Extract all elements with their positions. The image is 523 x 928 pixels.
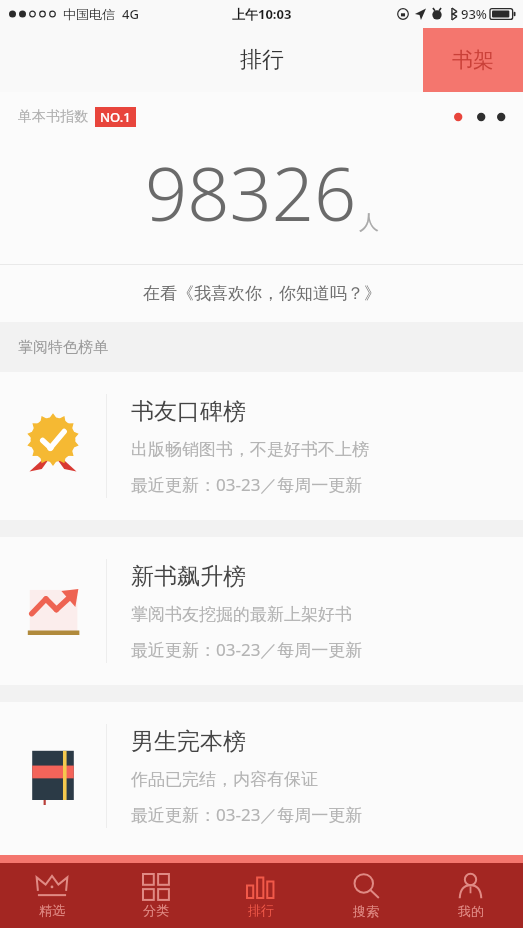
button[interactable]: 分类 [104,863,208,928]
staticText: 最近更新：03-23／每周一更新 [131,803,363,826]
button[interactable]: 精选 [0,863,104,928]
button[interactable]: Rising chart [0,537,523,685]
other: Medal [25,414,81,478]
button[interactable]: Medal [0,372,523,520]
button[interactable]: 搜索 [313,863,418,928]
staticText: 排行 [248,902,274,918]
staticText: 排行 [240,46,284,74]
staticText: 新书飙升榜 [131,562,246,591]
button[interactable]: 排行 [208,863,313,928]
staticText: 在看《我喜欢你，你知道吗？》 [143,283,381,304]
staticText: NO.1 [100,108,131,126]
button[interactable]: 我的 [418,863,523,928]
other: Page indicator [454,112,510,122]
staticText: 单本书指数 [18,108,88,126]
staticText: 4G [122,5,139,23]
staticText: 作品已完结，内容有保证 [131,769,318,790]
staticText: 精选 [39,902,65,918]
staticText: 人 [359,210,379,235]
button[interactable]: Book [0,702,523,850]
staticText: 搜索 [353,903,379,919]
staticText: 掌阅书友挖掘的最新上架好书 [131,604,352,625]
staticText: 书友口碑榜 [131,397,246,426]
button[interactable]: 书架 [423,28,523,92]
staticText: 98326 [145,142,357,243]
staticText: 分类 [143,902,169,918]
button[interactable]: 在看《我喜欢你，你知道吗？》 [0,265,523,322]
staticText: 93% [461,5,487,23]
staticText: 掌阅特色榜单 [18,338,108,357]
staticText: 最近更新：03-23／每周一更新 [131,473,363,496]
staticText: 中国电信 [63,6,115,22]
other: Book [27,746,79,806]
staticText: 最近更新：03-23／每周一更新 [131,638,363,661]
staticText: 男生完本榜 [131,727,246,756]
staticText: 书架 [452,47,494,73]
staticText: 我的 [458,903,484,919]
staticText: 上午10:03 [232,5,292,23]
other: Rising chart [24,580,82,642]
staticText: 出版畅销图书，不是好书不上榜 [131,439,369,460]
